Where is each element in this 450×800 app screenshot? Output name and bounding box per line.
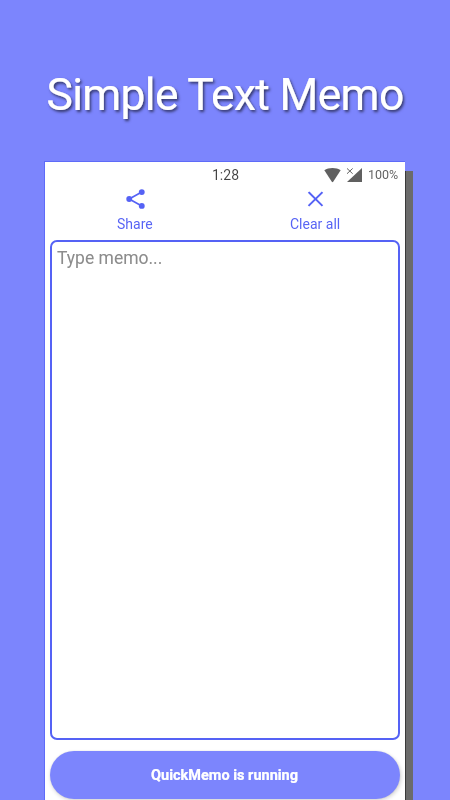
button[interactable]: Type memo... (50, 240, 400, 740)
staticText: 1:28 (212, 167, 239, 183)
button[interactable]: Share (45, 187, 225, 240)
staticText: QuickMemo is running (151, 767, 299, 784)
staticText: 100% (368, 167, 399, 182)
staticText: Clear all (290, 216, 341, 232)
button[interactable]: Clear all (225, 187, 405, 240)
staticText: Type memo... (57, 248, 163, 269)
staticText: Simple Text Memo (0, 69, 450, 121)
staticText: Share (117, 216, 153, 232)
button[interactable]: QuickMemo is running (50, 751, 400, 799)
